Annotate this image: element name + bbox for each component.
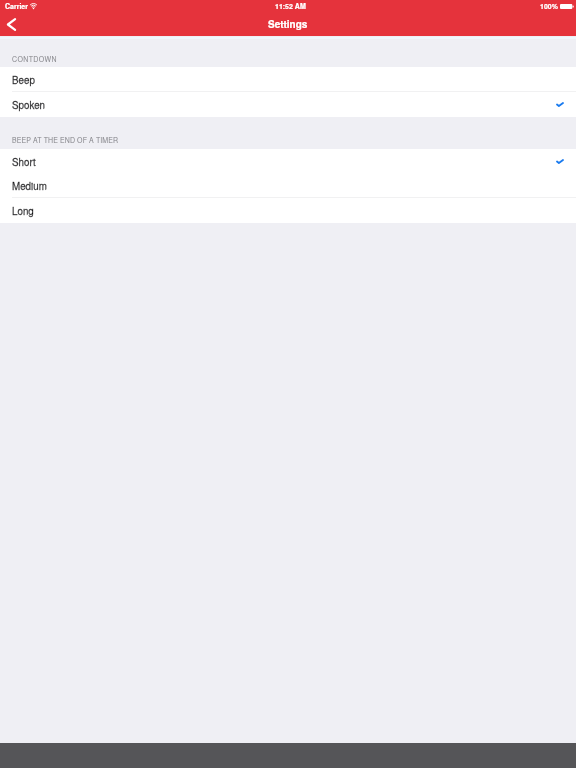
staticText: Medium xyxy=(12,179,47,193)
button[interactable]: Medium xyxy=(0,173,576,198)
staticText: Carrier xyxy=(5,1,28,11)
staticText: Short xyxy=(12,155,36,169)
button[interactable]: Short xyxy=(0,149,576,174)
staticText: 11:52 AM xyxy=(275,1,306,11)
staticText: BEEP AT THE END OF A TIMER xyxy=(12,135,119,145)
staticText: CONTDOWN xyxy=(12,54,57,64)
staticText: Spoken xyxy=(12,98,46,112)
staticText: 100% xyxy=(540,1,558,11)
staticText: Settings xyxy=(268,17,308,31)
staticText: Spoken xyxy=(12,98,46,112)
staticText: Beep xyxy=(12,73,35,87)
staticText: Medium xyxy=(12,179,47,193)
button[interactable]: Long xyxy=(0,198,576,223)
button[interactable]: Back xyxy=(0,12,30,36)
staticText: Short xyxy=(12,155,36,169)
button[interactable]: Beep xyxy=(0,67,576,92)
staticText: Long xyxy=(12,204,34,218)
staticText: Beep xyxy=(12,73,35,87)
button[interactable]: Spoken xyxy=(0,92,576,117)
staticText: Long xyxy=(12,204,34,218)
